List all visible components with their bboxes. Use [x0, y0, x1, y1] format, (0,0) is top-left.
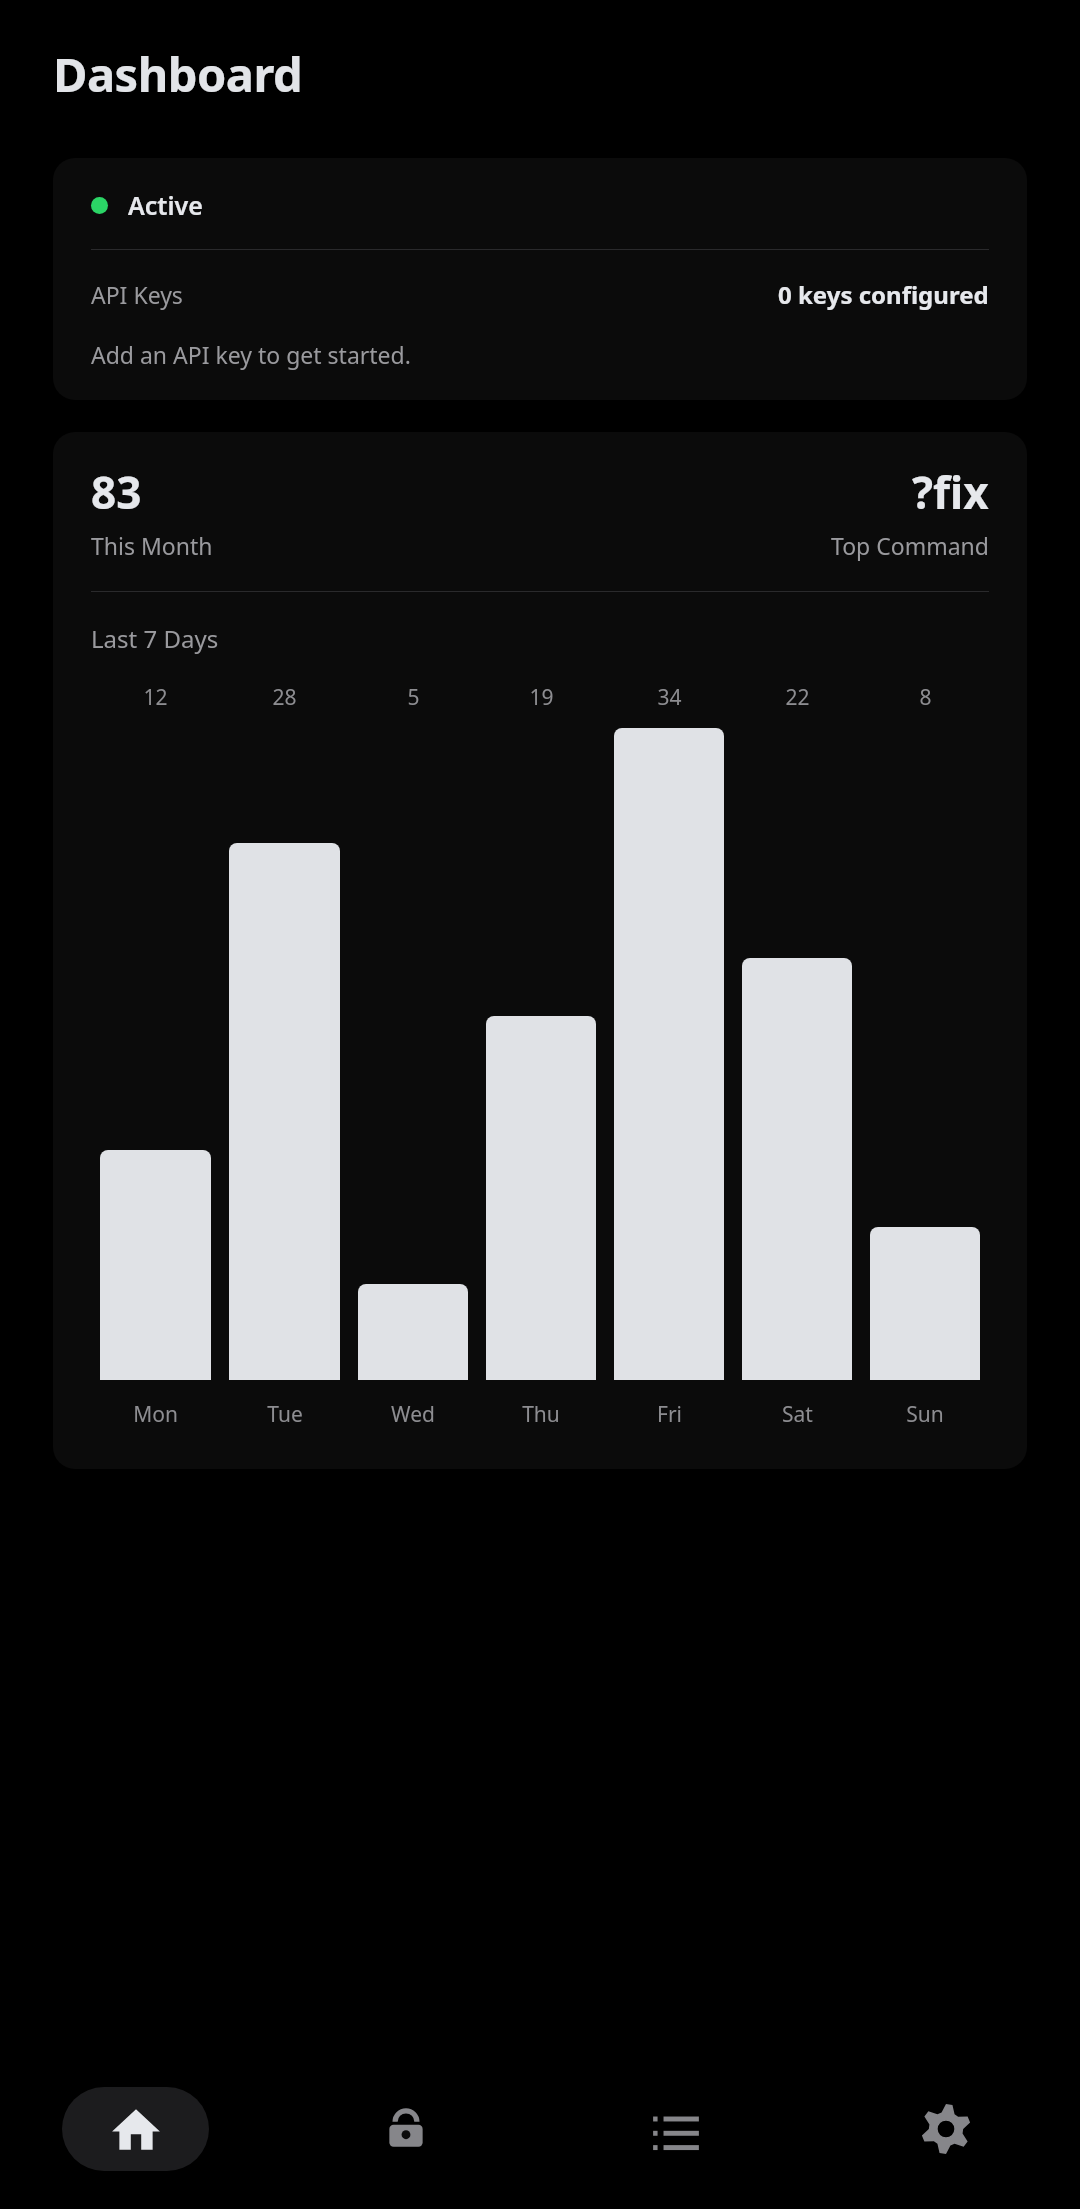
button[interactable]: Keys: [332, 2087, 479, 2171]
staticText: Fri: [657, 1400, 682, 1429]
staticText: Active: [128, 188, 203, 222]
staticText: Sun: [906, 1400, 944, 1429]
staticText: Tue: [267, 1400, 303, 1429]
staticText: Last 7 Days: [91, 622, 219, 655]
button[interactable]: 83: [53, 432, 1027, 1469]
staticText: Thu: [522, 1400, 560, 1429]
button[interactable]: Settings: [872, 2087, 1019, 2171]
staticText: This Month: [91, 530, 213, 561]
button[interactable]: Active: [53, 158, 1027, 400]
button[interactable]: Home: [62, 2087, 209, 2171]
staticText: 12: [143, 683, 168, 712]
staticText: 34: [657, 683, 682, 712]
staticText: Top Command: [831, 530, 989, 561]
staticText: Add an API key to get started.: [91, 339, 411, 370]
button[interactable]: History: [602, 2087, 749, 2171]
staticText: Sat: [782, 1400, 813, 1429]
staticText: Mon: [133, 1400, 178, 1429]
staticText: 5: [407, 683, 420, 712]
staticText: 83: [91, 462, 142, 522]
staticText: Dashboard: [53, 42, 303, 106]
staticText: 0 keys configured: [778, 278, 989, 311]
staticText: ?fix: [912, 462, 989, 522]
staticText: API Keys: [91, 279, 183, 310]
staticText: 22: [785, 683, 810, 712]
staticText: 19: [529, 683, 554, 712]
staticText: Wed: [391, 1400, 435, 1429]
staticText: 28: [272, 683, 297, 712]
staticText: 8: [919, 683, 932, 712]
